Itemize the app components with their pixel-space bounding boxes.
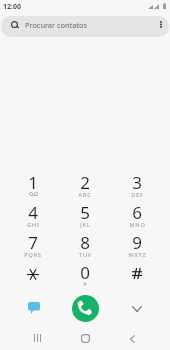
button[interactable]: 8: [59, 229, 111, 259]
button[interactable]: More options: [152, 16, 169, 37]
staticText: JKL: [80, 221, 91, 229]
staticText: 9: [132, 231, 142, 254]
button[interactable]: Hide keypad: [126, 298, 147, 319]
staticText: 2: [80, 171, 90, 194]
staticText: 0: [80, 261, 90, 284]
staticText: ABC: [78, 191, 92, 199]
button[interactable]: [7, 259, 59, 289]
button[interactable]: Procurar contatos: [1, 16, 169, 37]
staticText: 1: [28, 171, 38, 194]
button[interactable]: Message: [23, 297, 44, 318]
staticText: PQRS: [24, 251, 42, 259]
button[interactable]: 0: [59, 259, 111, 289]
staticText: 3: [132, 171, 142, 194]
button[interactable]: Call: [72, 295, 99, 322]
staticText: 8: [80, 231, 90, 254]
staticText: GHI: [27, 221, 40, 229]
staticText: MNO: [129, 221, 146, 229]
button[interactable]: 6: [111, 199, 163, 229]
button[interactable]: 5: [59, 199, 111, 229]
staticText: 12:00: [3, 2, 21, 12]
staticText: WXYZ: [128, 251, 147, 259]
staticText: 4: [28, 201, 38, 224]
button[interactable]: 1: [7, 169, 59, 199]
staticText: 7: [28, 231, 38, 254]
button[interactable]: 4: [7, 199, 59, 229]
staticText: 5: [80, 201, 90, 224]
button[interactable]: Recents: [25, 326, 50, 350]
staticText: Procurar contatos: [25, 20, 88, 30]
staticText: 6: [132, 201, 142, 224]
button[interactable]: 3: [111, 169, 163, 199]
button[interactable]: 7: [7, 229, 59, 259]
button[interactable]: 9: [111, 229, 163, 259]
button[interactable]: 2: [59, 169, 111, 199]
staticText: TUV: [79, 251, 92, 259]
staticText: DEF: [131, 191, 144, 199]
button[interactable]: [111, 259, 163, 289]
button[interactable]: Back: [120, 326, 145, 350]
button[interactable]: Home: [73, 326, 98, 350]
